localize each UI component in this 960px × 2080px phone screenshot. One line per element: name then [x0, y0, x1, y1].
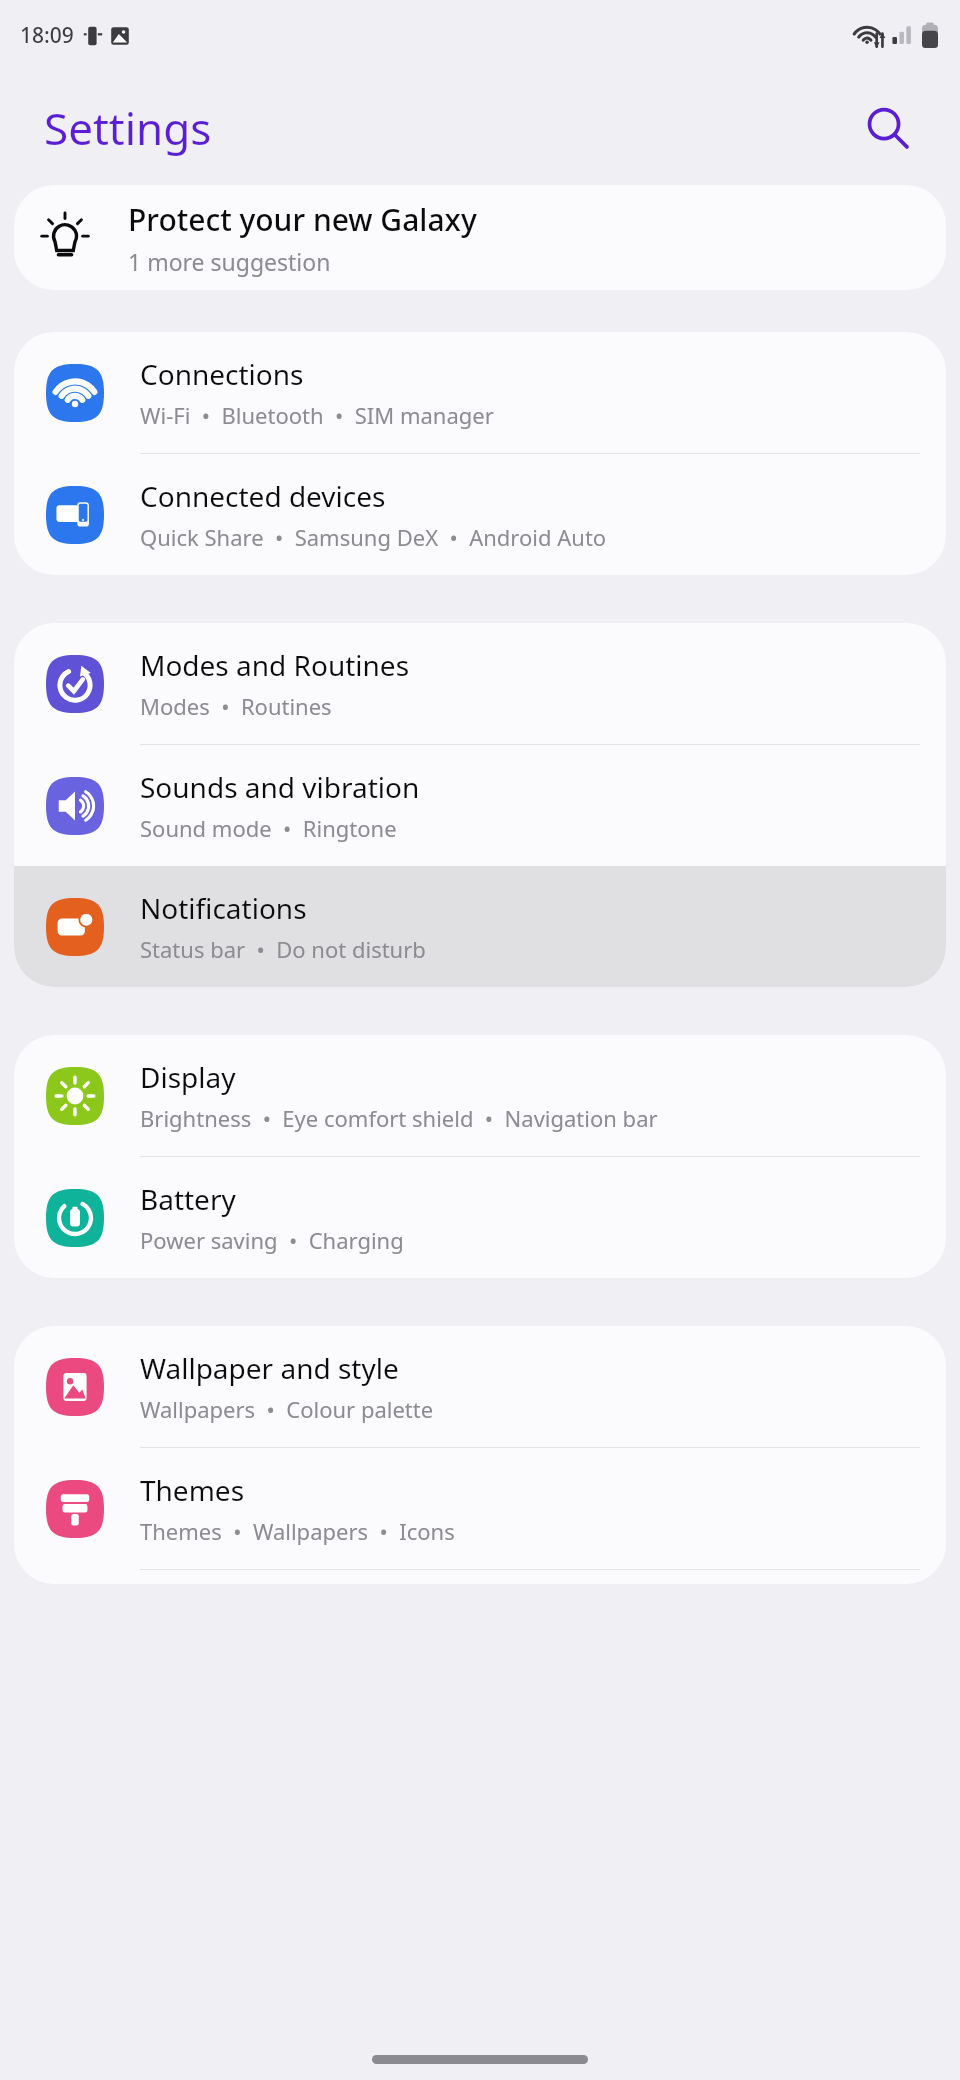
staticText: Wallpaper and style — [140, 1349, 399, 1387]
button[interactable]: Display — [14, 1035, 946, 1157]
staticText: Connected devices — [140, 477, 386, 515]
button[interactable]: Connections — [14, 332, 946, 454]
staticText: Themes — [140, 1471, 245, 1509]
staticText: 1 more suggestion — [128, 246, 331, 277]
staticText: Sounds and vibration — [140, 768, 420, 806]
button[interactable]: Search settings — [856, 96, 920, 160]
staticText: 18:09 — [20, 21, 74, 50]
staticText: Wi-Fi • Bluetooth • SIM manager — [140, 400, 494, 430]
staticText: Brightness • Eye comfort shield • Naviga… — [140, 1103, 658, 1133]
staticText: Settings — [44, 98, 212, 158]
button[interactable]: Connected devices — [14, 454, 946, 575]
staticText: Protect your new Galaxy — [128, 199, 477, 240]
button[interactable]: Notifications — [14, 866, 946, 987]
staticText: Sound mode • Ringtone — [140, 813, 397, 843]
button[interactable]: Wallpaper and style — [14, 1326, 946, 1448]
button[interactable]: Battery — [14, 1157, 946, 1278]
staticText: Modes • Routines — [140, 691, 332, 721]
staticText: Modes and Routines — [140, 646, 410, 684]
staticText: Themes • Wallpapers • Icons — [140, 1516, 455, 1546]
button[interactable]: Sounds and vibration — [14, 745, 946, 866]
staticText: Quick Share • Samsung DeX • Android Auto — [140, 522, 607, 552]
staticText: Wallpapers • Colour palette — [140, 1394, 434, 1424]
staticText: Status bar • Do not disturb — [140, 934, 426, 964]
button[interactable]: Protect your new Galaxy — [14, 185, 946, 290]
staticText: Display — [140, 1058, 236, 1096]
staticText: Notifications — [140, 889, 307, 927]
staticText: Connections — [140, 355, 304, 393]
staticText: Power saving • Charging — [140, 1225, 404, 1255]
staticText: Battery — [140, 1180, 236, 1218]
button[interactable]: Themes — [14, 1448, 946, 1570]
button[interactable]: Modes and Routines — [14, 623, 946, 745]
